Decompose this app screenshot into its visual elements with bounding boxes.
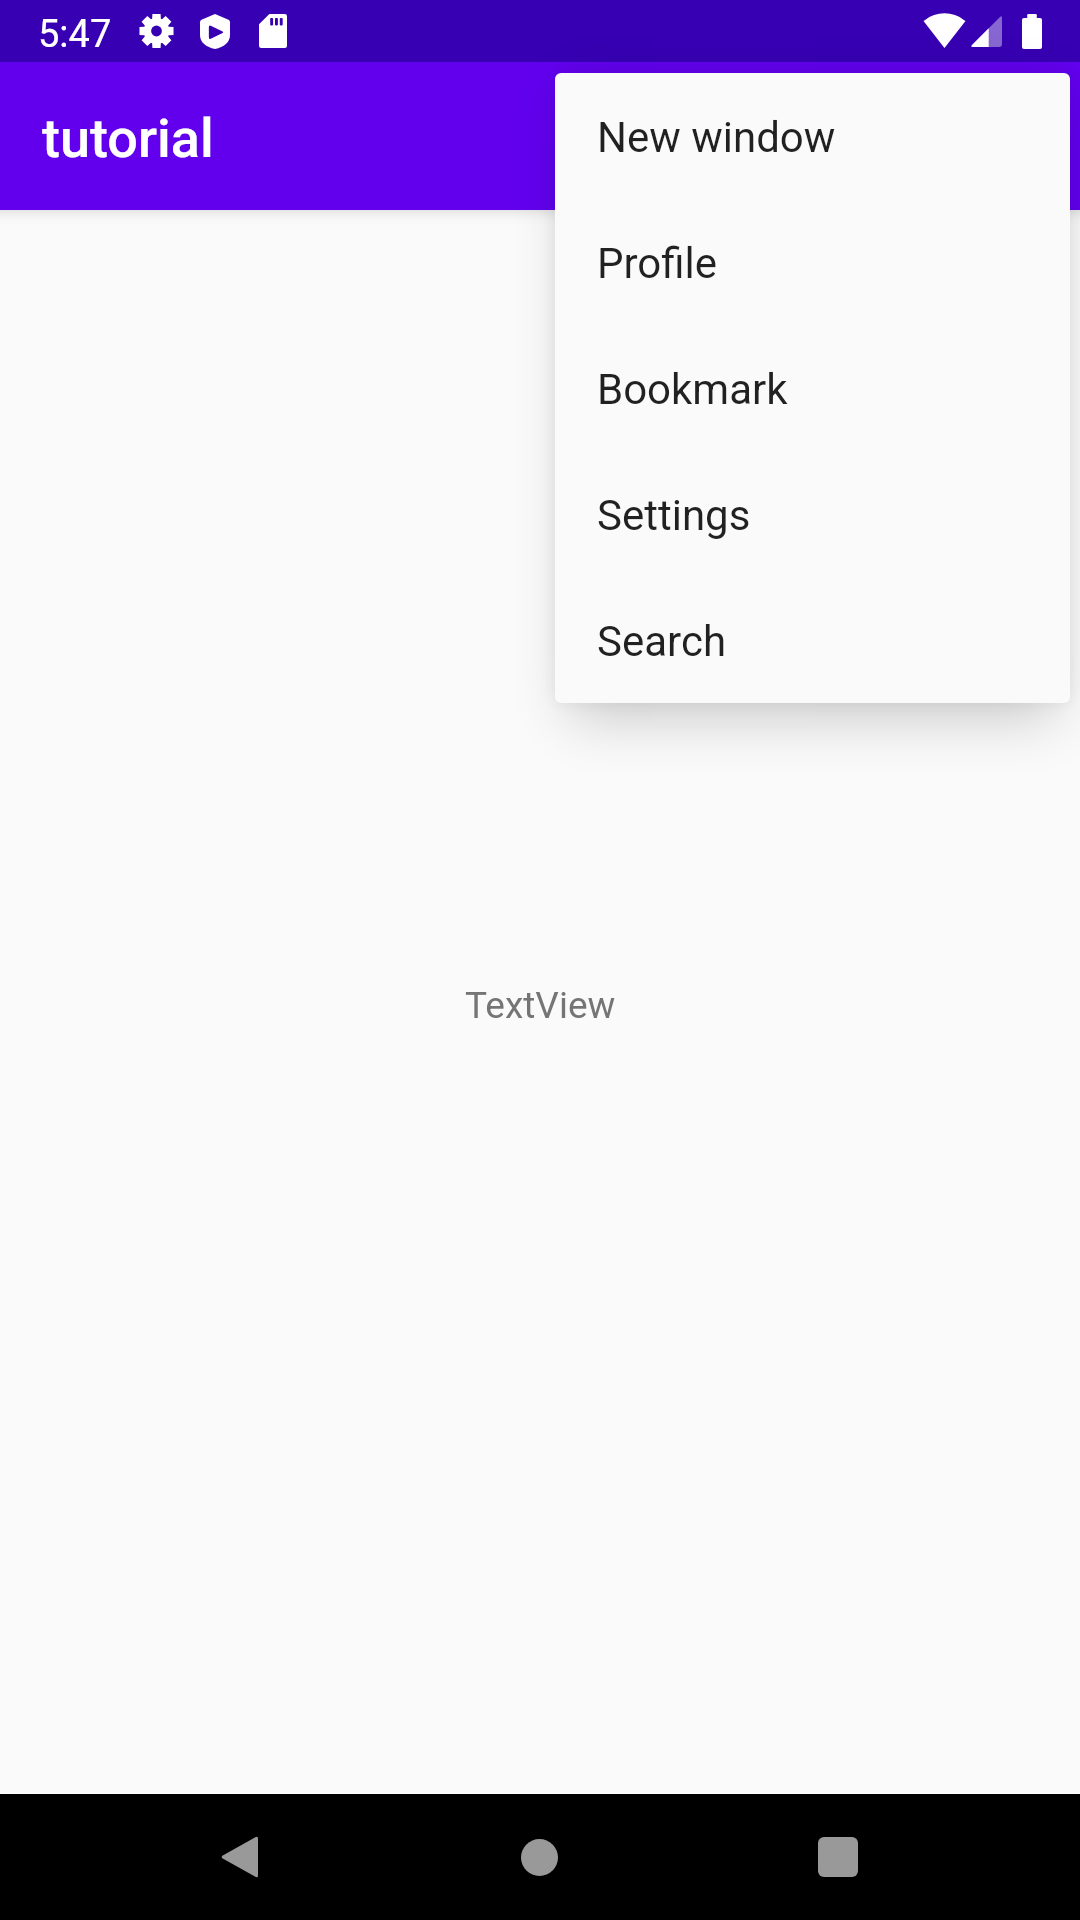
- button[interactable]: New window: [555, 73, 1070, 199]
- button[interactable]: Settings: [555, 451, 1070, 577]
- staticText: Profile: [597, 239, 718, 288]
- button[interactable]: Home: [499, 1817, 579, 1897]
- button[interactable]: Back: [199, 1817, 279, 1897]
- staticText: Settings: [597, 491, 751, 540]
- button[interactable]: Bookmark: [555, 325, 1070, 451]
- button[interactable]: Recent apps: [798, 1817, 878, 1897]
- staticText: New window: [597, 113, 836, 162]
- staticText: 5:47: [38, 12, 112, 57]
- staticText: TextView: [465, 984, 616, 1027]
- staticText: Search: [597, 617, 727, 666]
- button[interactable]: Profile: [555, 199, 1070, 325]
- staticText: tutorial: [42, 107, 214, 170]
- staticText: Bookmark: [597, 365, 788, 414]
- button[interactable]: Search: [555, 577, 1070, 703]
